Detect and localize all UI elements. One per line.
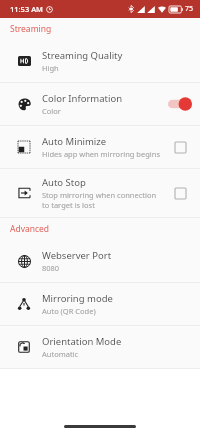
button[interactable]: Auto Stop bbox=[0, 169, 200, 217]
staticText: Color bbox=[42, 106, 61, 116]
staticText: Color Information bbox=[42, 92, 123, 105]
staticText: Webserver Port bbox=[42, 249, 112, 262]
button[interactable]: Mirroring mode bbox=[0, 283, 200, 325]
button[interactable]: Color Information bbox=[0, 83, 200, 125]
staticText: Orientation Mode bbox=[42, 335, 122, 348]
staticText: Advanced bbox=[10, 223, 50, 235]
staticText: 75 bbox=[185, 4, 194, 14]
button[interactable]: Webserver Port bbox=[0, 240, 200, 282]
button[interactable]: Streaming Quality bbox=[0, 40, 200, 82]
staticText: Streaming bbox=[10, 23, 52, 35]
staticText: Hides app when mirroring begins bbox=[42, 149, 160, 159]
staticText: Mirroring mode bbox=[42, 292, 113, 305]
staticText: 8080 bbox=[42, 263, 60, 273]
staticText: Automatic bbox=[42, 349, 79, 359]
staticText: Auto (QR Code) bbox=[42, 306, 96, 316]
staticText: Auto Stop bbox=[42, 176, 86, 189]
staticText: Stop mirroring when connection to target… bbox=[42, 190, 162, 210]
button[interactable]: Checkbox, unchecked bbox=[172, 185, 188, 201]
button[interactable]: Color Information toggle bbox=[168, 97, 192, 111]
staticText: High bbox=[42, 63, 59, 73]
button[interactable]: Auto Minimize bbox=[0, 126, 200, 168]
staticText: 11:53 AM bbox=[10, 4, 43, 14]
button[interactable]: Checkbox, unchecked bbox=[172, 139, 188, 155]
staticText: Auto Minimize bbox=[42, 135, 107, 148]
staticText: Streaming Quality bbox=[42, 49, 123, 62]
button[interactable]: Orientation Mode bbox=[0, 326, 200, 368]
